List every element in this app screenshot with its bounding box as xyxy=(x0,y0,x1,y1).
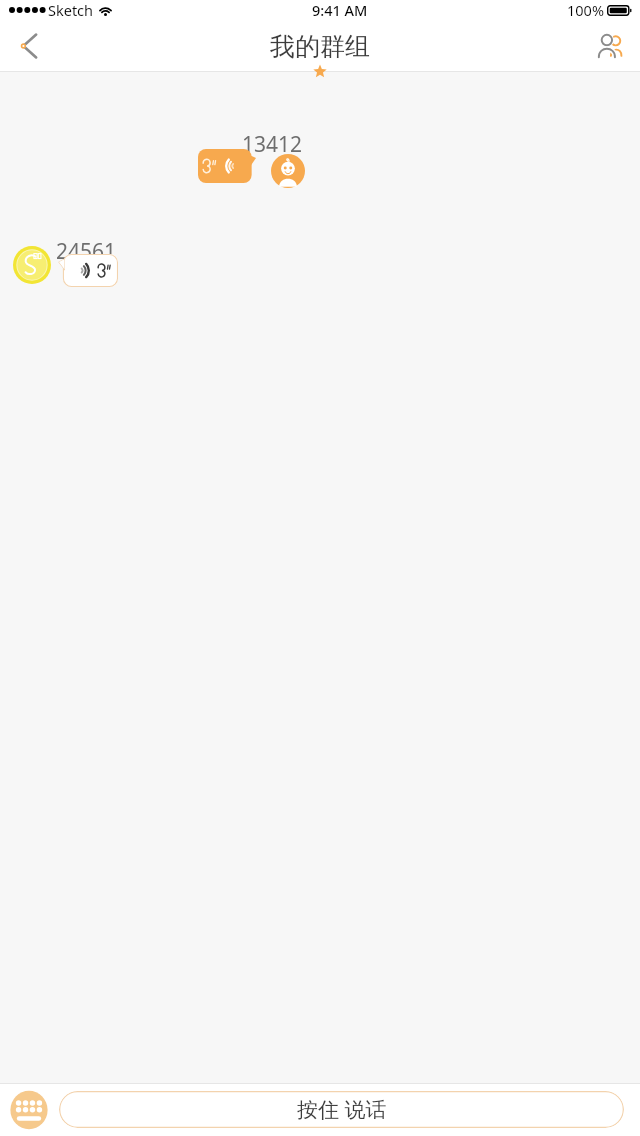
staticText: 按住 说话 xyxy=(297,1095,387,1124)
button[interactable]: Contact 24561 avatar xyxy=(13,246,51,284)
staticText: 100% xyxy=(567,0,604,20)
button[interactable]: Contact 13412 avatar xyxy=(271,154,305,188)
staticText: Sketch xyxy=(48,0,94,20)
staticText: 13412 xyxy=(242,130,303,159)
staticText: 我的群组 xyxy=(270,31,370,62)
staticText: 9:41 AM xyxy=(312,0,368,20)
button[interactable]: 按住 说话 xyxy=(59,1091,624,1128)
button[interactable]: Play voice message, 3 seconds xyxy=(198,149,256,183)
button[interactable]: Group members xyxy=(580,20,640,72)
button[interactable]: Switch to keyboard xyxy=(10,1090,48,1130)
staticText: 24561 xyxy=(56,237,117,266)
button[interactable]: Back xyxy=(0,20,56,72)
button[interactable]: Play voice message, 3 seconds xyxy=(59,254,118,287)
